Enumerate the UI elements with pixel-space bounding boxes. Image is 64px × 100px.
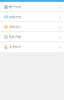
staticText: 帐户管理: [9, 5, 21, 9]
button[interactable]: 帐户管理: [0, 2, 64, 12]
button[interactable]: 设备管理: [0, 12, 64, 22]
button[interactable]: 软件升级: [0, 32, 64, 42]
other: Open: [58, 36, 61, 39]
other: Open: [58, 46, 61, 49]
button[interactable]: 消息中心: [0, 22, 64, 32]
staticText: 关于我们: [9, 45, 21, 49]
staticText: 软件升级: [9, 35, 21, 39]
other: Open: [58, 26, 61, 29]
other: Open: [58, 6, 61, 9]
staticText: 消息中心: [9, 25, 21, 29]
staticText: 设备管理: [9, 15, 21, 19]
button[interactable]: 关于我们: [0, 42, 64, 52]
other: Open: [58, 16, 61, 19]
